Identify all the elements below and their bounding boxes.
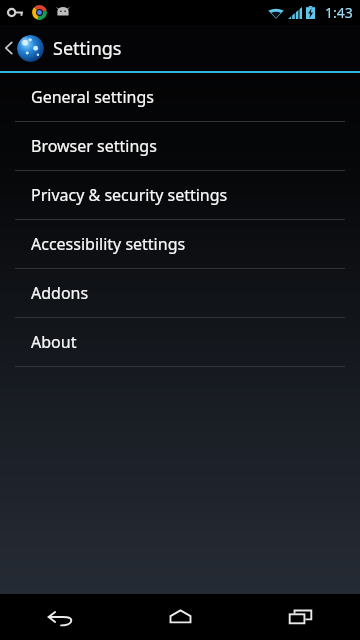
staticText: 1:43: [325, 3, 353, 22]
staticText: Accessibility settings: [31, 233, 186, 255]
staticText: About: [31, 331, 77, 353]
button[interactable]: Privacy & security settings: [0, 171, 360, 219]
staticText: Browser settings: [31, 135, 157, 157]
staticText: Addons: [31, 282, 89, 304]
button[interactable]: Addons: [0, 269, 360, 317]
button[interactable]: General settings: [0, 73, 360, 121]
staticText: Privacy & security settings: [31, 184, 228, 206]
button[interactable]: Recent apps: [240, 594, 360, 640]
button[interactable]: Accessibility settings: [0, 220, 360, 268]
button[interactable]: Back: [0, 594, 120, 640]
button[interactable]: Home: [120, 594, 240, 640]
button[interactable]: Browser settings: [0, 122, 360, 170]
staticText: General settings: [31, 86, 154, 108]
staticText: Settings: [53, 36, 122, 61]
button[interactable]: About: [0, 318, 360, 366]
button[interactable]: Navigate up, Settings: [0, 25, 360, 71]
